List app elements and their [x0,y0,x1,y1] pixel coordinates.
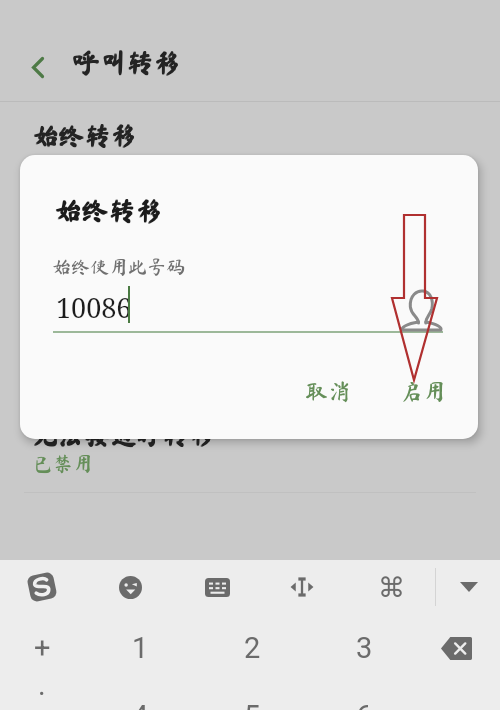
button[interactable]: Hide keyboard [448,566,490,608]
staticText: ⌘ [378,572,405,603]
button[interactable]: Emoji [109,566,151,608]
staticText: 无法接通时转移 [33,422,216,448]
staticText: 呼叫转移 [73,48,181,75]
staticText: 呼叫转移 [72,49,180,76]
staticText: 始终转移 [55,197,163,224]
staticText: 10086 [56,289,132,326]
staticText: 始终转移 [32,123,137,149]
staticText: 无法接通时转移 [32,421,215,447]
staticText: 5 [244,699,261,710]
staticText: 始终转移 [33,122,138,148]
button[interactable]: Back [14,43,62,91]
staticText: 呼叫转移 [72,48,180,75]
staticText: 1 [132,631,149,665]
button[interactable]: 6 [308,688,420,710]
button[interactable]: + [0,620,98,676]
staticText: 呼叫转移 [73,49,181,76]
staticText: 4 [132,699,149,710]
button[interactable]: 1 [84,620,196,676]
button[interactable]: Keyboard layout [196,566,238,608]
button[interactable]: Backspace [430,620,482,676]
staticText: 6 [356,699,373,710]
button[interactable]: Move cursor [281,566,323,608]
button[interactable]: 3 [308,620,420,676]
staticText: 取消 [305,380,351,403]
staticText: 无法接通时转移 [32,422,215,448]
button[interactable]: Sogou input [21,566,63,608]
staticText: 始终转移 [33,123,138,149]
button[interactable]: More options [370,566,412,608]
button[interactable]: 2 [196,620,308,676]
staticText: 始终转移 [32,122,137,148]
staticText: 始终转移 [54,197,162,224]
button[interactable]: 取消 [295,374,361,409]
staticText: 已禁用 [33,453,93,473]
staticText: 启用 [400,380,446,403]
staticText: 始终使用此号码 [52,257,186,276]
staticText: 无法接通时转移 [33,421,216,447]
staticText: 2 [244,631,261,665]
button[interactable]: 4 [84,688,196,710]
staticText: . [38,668,46,702]
staticText: + [34,631,51,665]
button[interactable]: 启用 [390,374,456,409]
staticText: 始终转移 [54,196,162,223]
staticText: 3 [356,631,373,665]
staticText: 始终转移 [55,196,163,223]
button[interactable]: 5 [196,688,308,710]
button[interactable]: . [0,657,98,710]
